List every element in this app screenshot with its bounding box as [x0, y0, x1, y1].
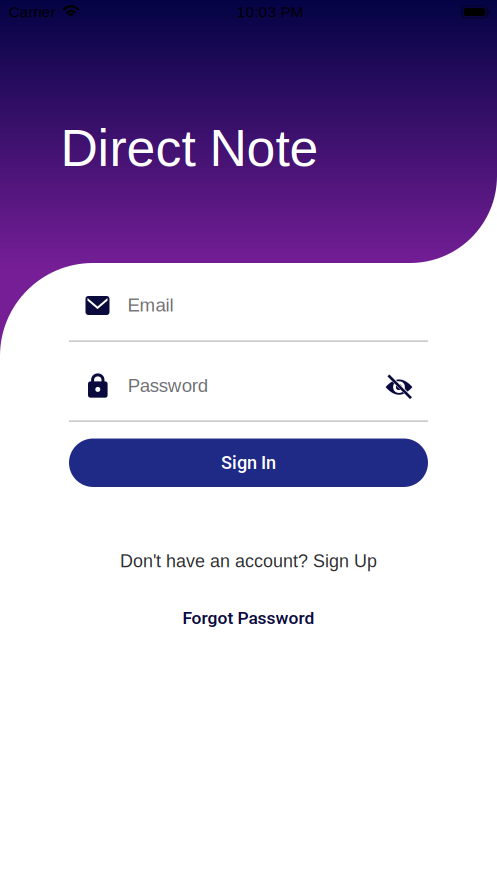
button[interactable]: Sign In	[69, 438, 428, 487]
staticText: Don't have an account? Sign Up	[120, 551, 377, 571]
staticText: Forgot Password	[182, 608, 314, 628]
button[interactable]: Don't have an account? Sign Up	[69, 544, 428, 578]
button[interactable]: Show password	[376, 364, 422, 408]
staticText: Email	[127, 295, 173, 315]
staticText: Sign In	[221, 452, 276, 473]
staticText: Direct Note	[60, 119, 318, 177]
staticText: Password	[128, 375, 208, 396]
staticText: Carrier	[8, 3, 55, 21]
button[interactable]: Forgot Password	[69, 601, 428, 635]
staticText: 10:03 PM	[236, 3, 303, 21]
